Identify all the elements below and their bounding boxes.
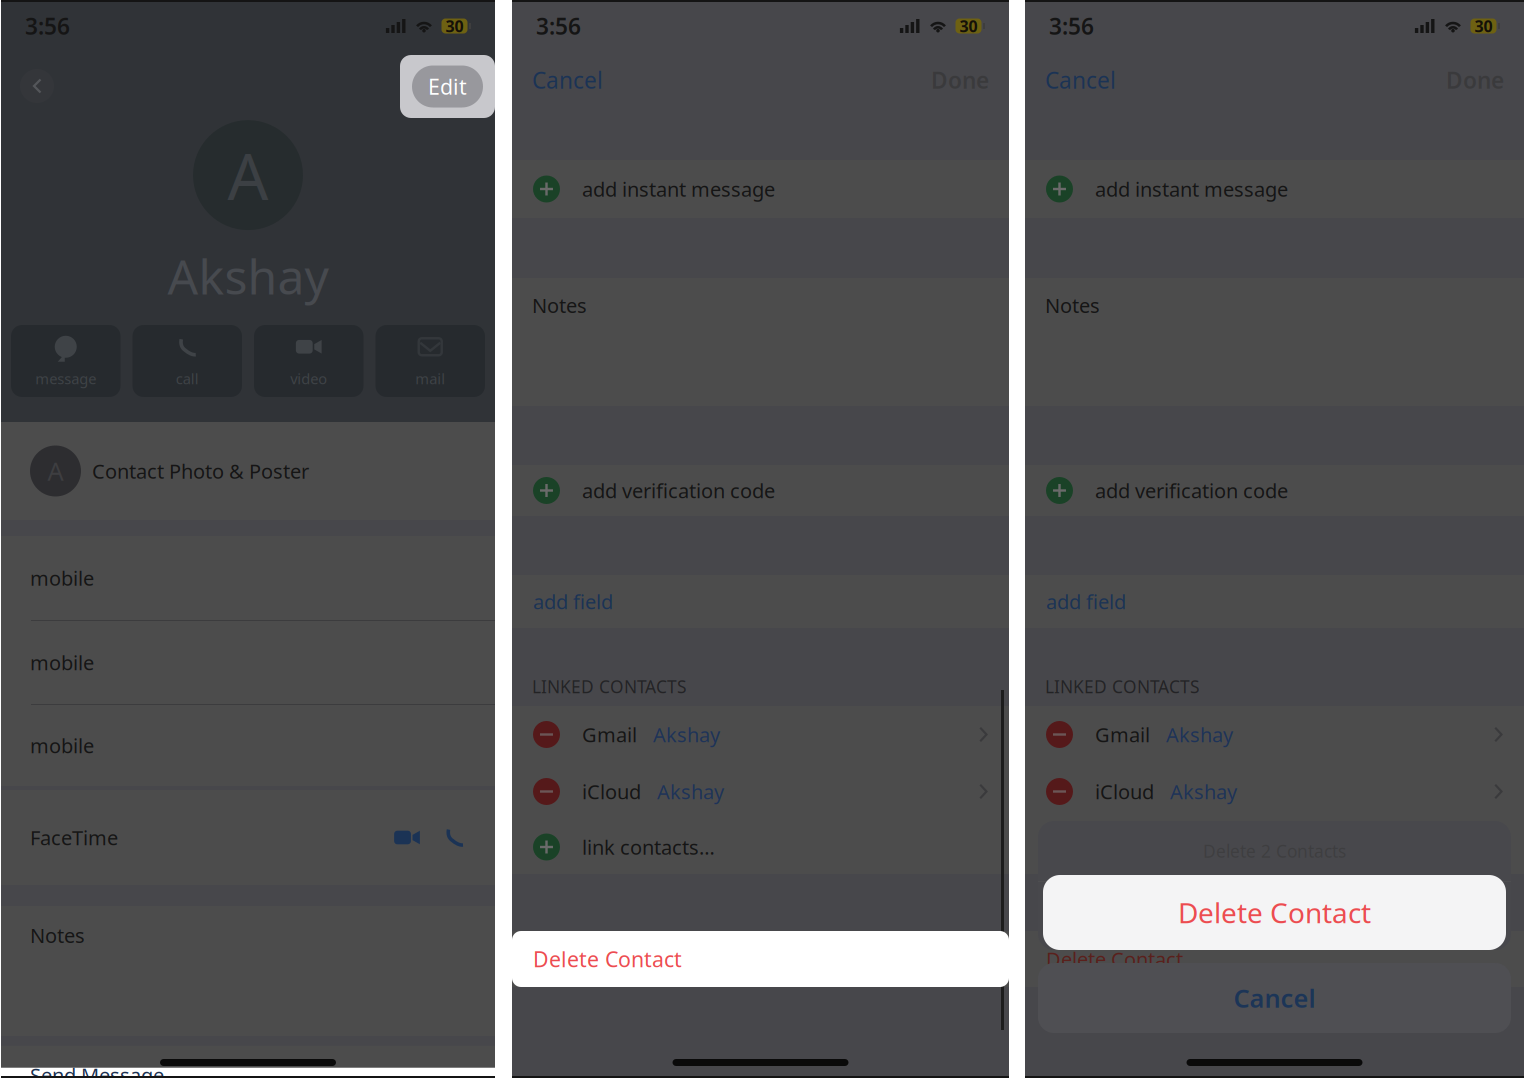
staticText: LINKED CONTACTS bbox=[532, 675, 687, 698]
button[interactable]: FaceTime audio bbox=[431, 814, 479, 860]
button[interactable]: mobile bbox=[1, 705, 495, 786]
button[interactable]: add verification code bbox=[512, 465, 1009, 516]
staticText: Akshay bbox=[653, 721, 720, 748]
staticText: Cancel bbox=[1045, 65, 1116, 95]
staticText: add instant message bbox=[582, 176, 775, 202]
button[interactable]: Done bbox=[1446, 65, 1504, 95]
button[interactable]: Done bbox=[931, 65, 989, 95]
staticText: Edit bbox=[428, 72, 467, 101]
button[interactable]: Delete Contact bbox=[512, 931, 1009, 987]
staticText: 3:56 bbox=[1049, 11, 1094, 41]
staticText: LINKED CONTACTS bbox=[1045, 675, 1200, 698]
button[interactable]: message bbox=[11, 325, 120, 397]
staticText: call bbox=[176, 369, 199, 388]
staticText: iCloud bbox=[582, 778, 641, 805]
staticText: A bbox=[47, 454, 63, 488]
button[interactable]: Delete Contact bbox=[1038, 882, 1511, 950]
button[interactable]: add verification code bbox=[1025, 465, 1524, 516]
staticText: Delete Contact bbox=[533, 946, 670, 972]
staticText: Gmail bbox=[582, 721, 637, 748]
staticText: add instant message bbox=[1095, 176, 1288, 202]
staticText: mobile bbox=[30, 565, 94, 591]
staticText: add field bbox=[533, 588, 613, 615]
button[interactable]: Cancel bbox=[532, 65, 603, 95]
staticText: mail bbox=[415, 369, 445, 388]
button[interactable]: Delete Contact bbox=[1043, 875, 1506, 950]
button[interactable]: add field bbox=[512, 575, 1009, 628]
button[interactable]: link contacts… bbox=[512, 820, 1009, 874]
staticText: mobile bbox=[30, 732, 94, 759]
button[interactable]: mail bbox=[375, 325, 485, 397]
button[interactable]: Delete Contact bbox=[512, 931, 1009, 987]
staticText: Done bbox=[931, 65, 989, 95]
staticText: Akshay bbox=[657, 778, 724, 805]
button[interactable]: Cancel bbox=[1025, 963, 1524, 1033]
button[interactable]: Delete Contact bbox=[1025, 931, 1524, 987]
staticText: Cancel bbox=[1233, 981, 1315, 1015]
staticText: link contacts… bbox=[582, 834, 715, 860]
button[interactable]: video bbox=[254, 325, 363, 397]
staticText: Cancel bbox=[532, 65, 603, 95]
staticText: 30 bbox=[445, 15, 463, 37]
staticText: iCloud bbox=[1095, 778, 1154, 805]
staticText: add verification code bbox=[1095, 477, 1288, 504]
staticText: A bbox=[227, 133, 268, 218]
button[interactable]: iCloud bbox=[512, 763, 1009, 820]
button[interactable]: FaceTime video bbox=[383, 814, 431, 860]
staticText: Akshay bbox=[167, 244, 328, 308]
button[interactable]: call bbox=[132, 325, 242, 397]
staticText: Notes bbox=[30, 922, 85, 949]
staticText: 3:56 bbox=[536, 11, 581, 41]
staticText: Delete Contact bbox=[1046, 946, 1183, 972]
staticText: Notes bbox=[1045, 292, 1100, 319]
staticText: Notes bbox=[532, 292, 587, 319]
staticText: FaceTime bbox=[30, 824, 118, 851]
button[interactable]: Edit bbox=[400, 55, 495, 118]
staticText: add field bbox=[1046, 588, 1126, 615]
button[interactable]: Gmail bbox=[512, 706, 1009, 763]
button[interactable]: A bbox=[1, 422, 495, 520]
button[interactable]: Gmail bbox=[1025, 706, 1524, 763]
staticText: Send Message bbox=[30, 1062, 164, 1078]
staticText: Delete Contact bbox=[1187, 899, 1361, 933]
staticText: 30 bbox=[959, 15, 977, 37]
staticText: Gmail bbox=[1095, 721, 1150, 748]
staticText: Delete Contact bbox=[1178, 894, 1371, 931]
staticText: add verification code bbox=[582, 477, 775, 504]
staticText: 3:56 bbox=[25, 11, 70, 41]
button[interactable]: add instant message bbox=[512, 160, 1009, 218]
button[interactable]: Back bbox=[17, 66, 57, 106]
staticText: message bbox=[35, 369, 96, 388]
staticText: Delete 2 Contacts bbox=[1203, 839, 1346, 862]
button[interactable]: Cancel bbox=[1045, 65, 1116, 95]
button[interactable]: mobile bbox=[1, 621, 495, 704]
button[interactable]: add field bbox=[1025, 575, 1524, 628]
staticText: 30 bbox=[1474, 15, 1492, 37]
button[interactable]: add instant message bbox=[1025, 160, 1524, 218]
button[interactable]: mobile bbox=[1, 536, 495, 620]
staticText: Done bbox=[1446, 65, 1504, 95]
staticText: Contact Photo & Poster bbox=[92, 458, 309, 484]
button[interactable]: iCloud bbox=[1025, 763, 1524, 820]
staticText: Akshay bbox=[1170, 778, 1237, 805]
staticText: Delete Contact bbox=[533, 945, 682, 973]
staticText: video bbox=[290, 369, 327, 388]
staticText: mobile bbox=[30, 649, 94, 676]
staticText: Akshay bbox=[1166, 721, 1233, 748]
